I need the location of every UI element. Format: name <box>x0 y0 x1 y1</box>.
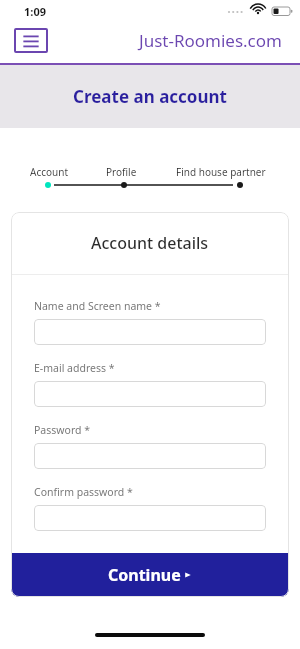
button[interactable] <box>34 319 266 345</box>
staticText: Find house partner <box>176 165 266 179</box>
staticText: Continue <box>108 564 181 586</box>
staticText: Account <box>30 165 69 179</box>
staticText: 1:09 <box>24 4 46 19</box>
button[interactable] <box>34 443 266 469</box>
staticText: Just-Roomies.com <box>139 29 282 52</box>
staticText: Profile <box>106 165 137 179</box>
staticText: Name and Screen name * <box>34 299 161 313</box>
staticText: Account details <box>91 232 209 254</box>
staticText: Password * <box>34 423 91 437</box>
staticText: E-mail address * <box>34 361 115 375</box>
button[interactable]: Menu <box>14 28 48 53</box>
button[interactable] <box>34 381 266 407</box>
staticText: Create an account <box>73 85 227 108</box>
button[interactable] <box>34 505 266 531</box>
button[interactable]: Continue <box>11 553 289 597</box>
staticText: Confirm password * <box>34 485 133 499</box>
